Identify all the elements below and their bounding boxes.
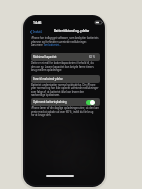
- staticText: Læs mere: [31, 43, 44, 46]
- staticText: som følge af, at batteriet ikke kan leve…: [31, 90, 85, 93]
- button[interactable]: Maksimal kapacitet: [31, 53, 100, 61]
- staticText: ydeevne og forhindrer uventede nedluknin…: [31, 40, 87, 43]
- staticText: brug mellem opladninger.: [31, 68, 62, 71]
- button[interactable]: Optimeret batteriopladning til: [86, 100, 95, 105]
- staticText: yder normalt og har ikke oplevet uvented…: [31, 86, 99, 89]
- button[interactable]: Tilbage til Indstillinger: [30, 29, 43, 34]
- staticText: vente med at oplade ud over 80 %, indtil…: [31, 110, 94, 113]
- staticText: Indstil.: [33, 30, 43, 34]
- staticText: 14:46: [33, 20, 42, 24]
- staticText: 82 %: [89, 55, 95, 59]
- button[interactable]: om batteriet…: [44, 43, 61, 46]
- staticText: Evne til maksimal ydelse: [33, 77, 63, 81]
- staticText: Dette er et mål for batterikapaciteten i…: [31, 61, 94, 64]
- staticText: nødvendige spidsstrøm.: [31, 93, 60, 96]
- staticText: den var ny. Lavere kapacitet kan betyde …: [31, 65, 94, 68]
- staticText: iPhone har indbygget software, som besky…: [31, 36, 99, 39]
- button[interactable]: Optimeret batteriopladning: [31, 98, 100, 106]
- staticText: iPhone lærer af din daglige opladningsru…: [31, 106, 99, 109]
- staticText: Batteriet understøtter normal spidsydels…: [31, 83, 96, 86]
- staticText: Maksimal kapacitet: [33, 55, 57, 59]
- staticText: for at bruge den.: [31, 113, 52, 116]
- button[interactable]: Evne til maksimal ydelse: [31, 75, 100, 83]
- staticText: Optimeret batteriopladning: [33, 100, 67, 104]
- staticText: Batteritilstand og -ydelse: [54, 29, 90, 33]
